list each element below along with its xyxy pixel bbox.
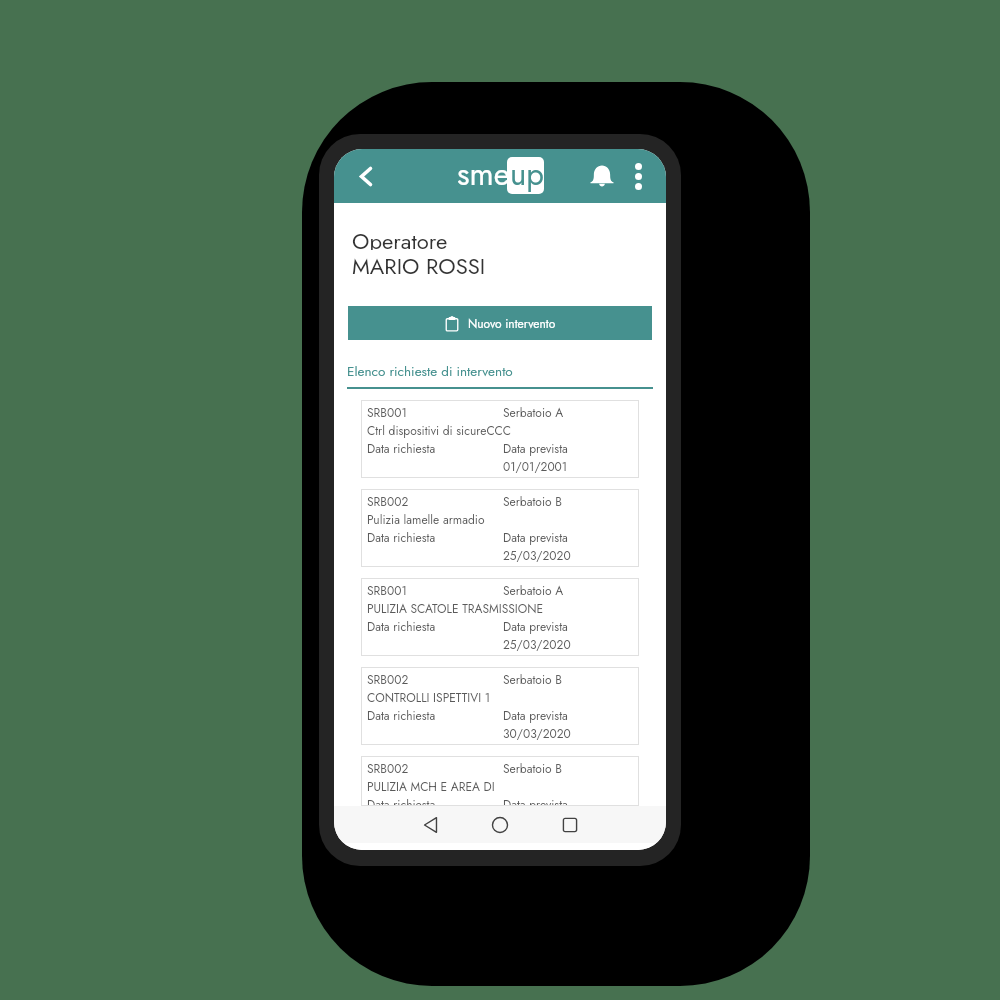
staticText: Elenco richieste di intervento	[347, 362, 513, 382]
button[interactable]: Home	[483, 808, 517, 842]
staticText: Pulizia lamelle armadio	[367, 511, 485, 528]
staticText: Ctrl dispositivi di sicureCCC	[367, 422, 512, 439]
staticText: Operatore	[352, 225, 448, 250]
staticText: SRB002	[367, 760, 503, 777]
staticText: 25/03/2020	[503, 547, 571, 564]
staticText: PULIZIA MCH E AREA DI	[367, 778, 495, 795]
staticText: Data richiesta	[367, 618, 436, 635]
staticText: PULIZIA SCATOLE TRASMISSIONE	[367, 600, 544, 617]
button[interactable]: SRB001	[361, 578, 639, 656]
button[interactable]: Back	[346, 149, 386, 203]
staticText: SRB002	[367, 493, 503, 510]
staticText: 30/03/2020	[503, 725, 571, 742]
staticText: MARIO ROSSI	[352, 250, 486, 275]
button[interactable]: More options	[620, 149, 656, 203]
staticText: sme	[457, 152, 510, 192]
staticText: SRB002	[367, 671, 503, 688]
staticText: Data prevista	[503, 529, 568, 546]
button[interactable]: Nuovo intervento	[348, 306, 652, 340]
staticText: Data richiesta	[367, 796, 436, 806]
staticText: SRB001	[367, 404, 503, 421]
staticText: Data prevista	[503, 707, 568, 724]
staticText: Serbatoio A	[503, 404, 633, 421]
staticText: Data richiesta	[367, 440, 436, 457]
staticText: Data richiesta	[367, 707, 436, 724]
staticText: Serbatoio B	[503, 760, 633, 777]
button[interactable]: Notifications	[582, 149, 622, 203]
button[interactable]: SRB002	[361, 667, 639, 745]
staticText: Data prevista	[503, 440, 568, 457]
staticText: Serbatoio A	[503, 582, 633, 599]
staticText: 25/03/2020	[503, 636, 571, 653]
button[interactable]: Recent apps	[553, 808, 587, 842]
button[interactable]: SRB002	[361, 756, 639, 806]
staticText: Data richiesta	[367, 529, 436, 546]
staticText: Serbatoio B	[503, 493, 633, 510]
staticText: Nuovo intervento	[468, 315, 556, 332]
staticText: Data prevista	[503, 796, 568, 806]
staticText: SRB001	[367, 582, 503, 599]
staticText: Data prevista	[503, 618, 568, 635]
button[interactable]: SRB001	[361, 400, 639, 478]
button[interactable]: Back	[413, 808, 447, 842]
staticText: CONTROLLI ISPETTIVI 1	[367, 689, 491, 706]
staticText: up	[510, 152, 544, 192]
button[interactable]: SRB002	[361, 489, 639, 567]
staticText: 01/01/2001	[503, 458, 568, 475]
staticText: Serbatoio B	[503, 671, 633, 688]
